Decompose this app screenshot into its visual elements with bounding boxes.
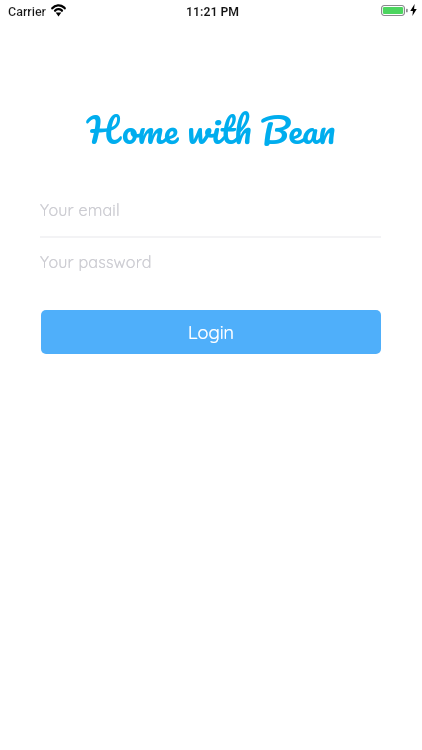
staticText: Login <box>188 321 234 344</box>
button[interactable]: Your email <box>40 189 381 238</box>
other: Charging <box>410 4 417 16</box>
other: Battery charging <box>381 5 408 16</box>
staticText: Your email <box>40 200 120 220</box>
other: Wi-Fi signal <box>51 4 66 15</box>
staticText: Carrier <box>8 4 47 19</box>
staticText: Your password <box>40 252 152 272</box>
staticText: Home with Bean <box>0 98 422 159</box>
staticText: 11:21 PM <box>186 5 239 19</box>
button[interactable]: Login <box>41 310 381 354</box>
button[interactable]: Your password <box>40 241 381 290</box>
